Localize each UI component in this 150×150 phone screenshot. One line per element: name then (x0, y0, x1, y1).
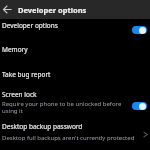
staticText: Screen lock (2, 90, 37, 99)
button[interactable]: Developer options (0, 19, 150, 40)
staticText: Memory (2, 45, 28, 54)
staticText: Developer options (2, 21, 58, 30)
staticText: Developer options (18, 5, 87, 15)
staticText: Desktop full backups aren't currently pr… (2, 134, 135, 142)
button[interactable] (132, 26, 147, 34)
staticText: Take bug report (2, 70, 51, 79)
button[interactable] (132, 102, 147, 110)
staticText: Desktop backup password (2, 122, 83, 131)
button[interactable]: Desktop backup password (0, 115, 150, 143)
button[interactable]: Screen lock (0, 85, 150, 115)
button[interactable] (3, 5, 12, 14)
button[interactable]: Take bug report (0, 62, 150, 85)
button[interactable]: Memory (0, 40, 150, 62)
staticText: Require your phone to be unlocked before… (2, 100, 122, 115)
